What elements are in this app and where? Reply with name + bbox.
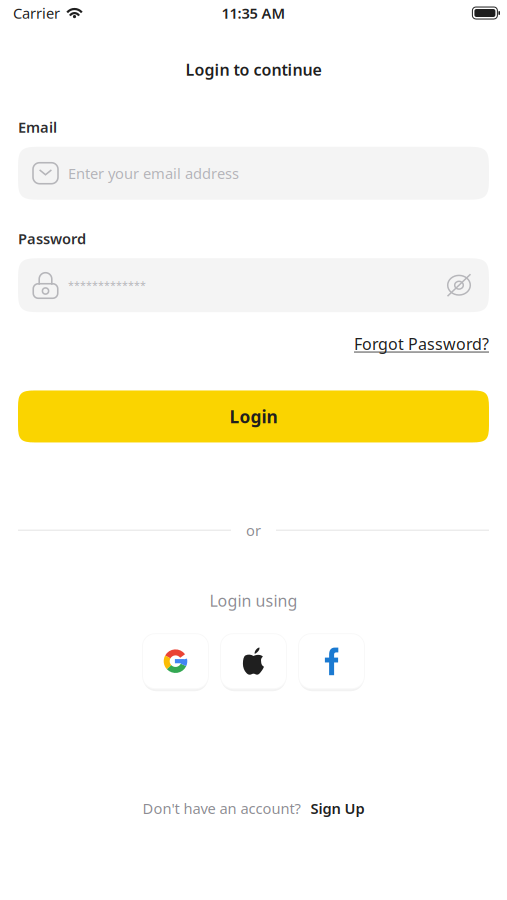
button[interactable]: Sign in with Google [142,633,209,689]
button[interactable]: Show password [447,274,474,297]
button[interactable]: Sign Up [310,798,364,818]
staticText: Carrier [13,3,60,23]
staticText: Enter your email address [68,163,239,183]
staticText: ************* [68,278,146,292]
button[interactable]: Forgot Password? [354,333,489,354]
staticText: Password [18,229,86,248]
staticText: Login to continue [185,59,321,80]
staticText: Forgot Password? [354,333,489,354]
staticText: or [246,520,261,540]
button[interactable]: Sign in with Facebook [298,633,365,689]
staticText: Sign Up [310,798,364,818]
staticText: Login using [209,590,297,611]
button[interactable]: Sign in with Apple [220,633,287,689]
staticText: 11:35 AM [221,3,285,23]
staticText: Don't have an account? [142,798,300,818]
staticText: Login [229,405,277,428]
button[interactable]: Login [18,390,489,442]
staticText: Email [18,117,57,137]
